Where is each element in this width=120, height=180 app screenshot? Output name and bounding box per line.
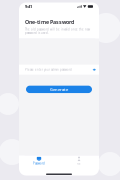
button[interactable]: Me (59, 157, 99, 165)
button[interactable]: Show password (93, 68, 96, 71)
button[interactable]: Password (19, 157, 59, 165)
staticText: 9:41 (25, 4, 32, 9)
button[interactable]: Generate (26, 86, 92, 93)
staticText: Generate (50, 87, 68, 92)
staticText: One-time Password (25, 18, 74, 26)
staticText: Please enter your admin password (25, 68, 72, 71)
staticText: Me (77, 162, 81, 165)
staticText: The old password will be invalid once th… (25, 28, 90, 35)
staticText: Password (33, 162, 45, 165)
